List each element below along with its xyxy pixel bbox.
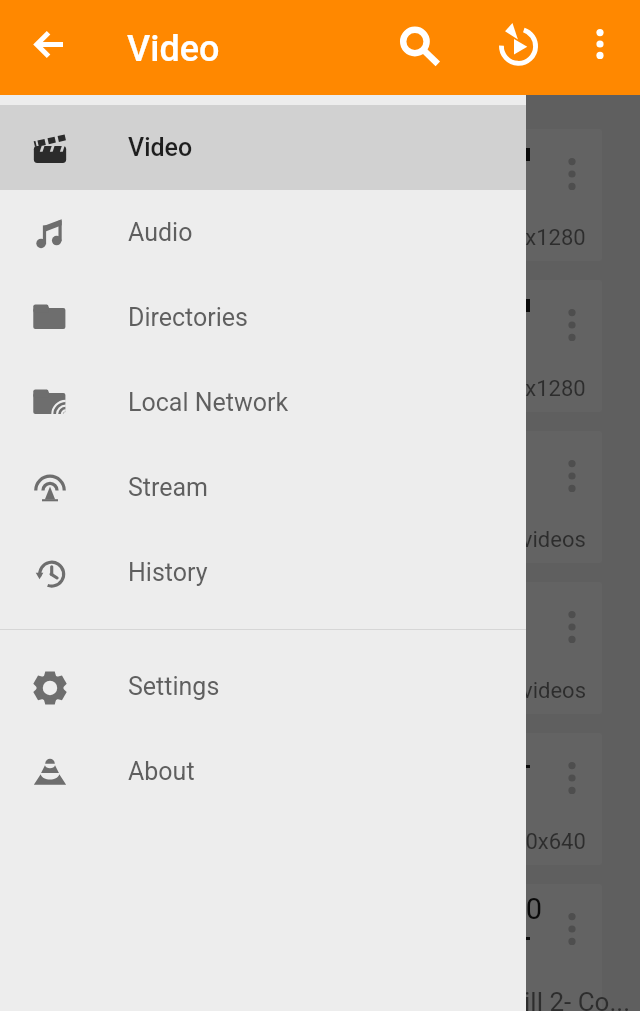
staticText: Settings [128, 672, 220, 701]
button[interactable]: Menu [543, 897, 601, 961]
button[interactable]: Menu [330, 733, 602, 865]
staticText: Landscape 640x640 [388, 829, 586, 855]
button[interactable]: Video [0, 105, 526, 190]
button[interactable]: Menu [330, 280, 602, 412]
staticText: Audio [128, 218, 193, 247]
staticText: Stream [128, 473, 209, 502]
button[interactable]: Menu [543, 142, 601, 206]
staticText: ill 2- Co... [524, 987, 630, 1011]
button[interactable]: Settings [0, 644, 526, 729]
button[interactable]: Stream [0, 445, 526, 530]
button[interactable]: Audio [0, 190, 526, 275]
staticText: Video [128, 133, 193, 162]
staticText: Sample 720x1280 [409, 225, 586, 251]
button[interactable]: Search [387, 13, 451, 77]
staticText: Sample 720x1280 [409, 376, 586, 402]
button[interactable]: Refresh [486, 12, 550, 76]
staticText: Directories [128, 303, 248, 332]
button[interactable]: Menu [543, 293, 601, 357]
staticText: Local Network [128, 388, 289, 417]
button[interactable]: Menu [330, 129, 602, 261]
staticText: Tears of Steel videos [382, 678, 586, 704]
button[interactable]: Menu [330, 582, 602, 714]
button[interactable]: Local Network [0, 360, 526, 445]
button[interactable]: Menu [543, 595, 601, 659]
staticText: History [128, 558, 208, 587]
button[interactable]: Directories [0, 275, 526, 360]
staticText: Video [127, 28, 220, 70]
button[interactable]: About [0, 729, 526, 814]
staticText: About [128, 757, 195, 786]
staticText: Big Buck Bunny videos [365, 527, 586, 553]
button[interactable]: Menu [330, 431, 602, 563]
button[interactable]: Menu [543, 746, 601, 810]
button[interactable]: History [0, 530, 526, 615]
staticText: Video clip 1080 [343, 892, 542, 926]
button[interactable]: Video clip 1080 [330, 884, 602, 1011]
button[interactable]: Back [18, 13, 80, 75]
button[interactable]: More options [570, 14, 630, 74]
button[interactable]: Menu [543, 444, 601, 508]
